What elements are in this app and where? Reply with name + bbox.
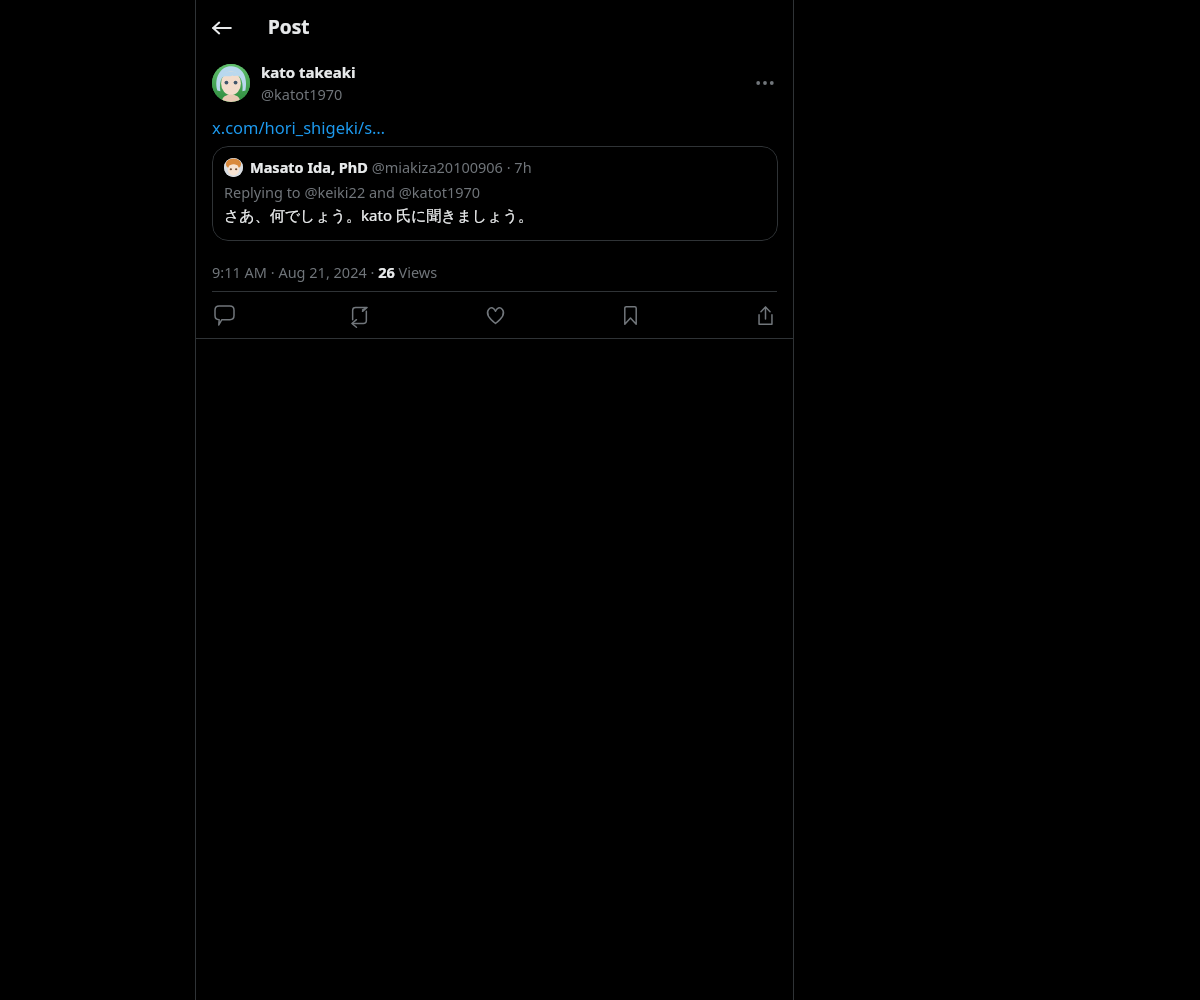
button[interactable]: Masato Ida, PhD @miakiza20100906 · 7h bbox=[212, 146, 778, 241]
button[interactable]: More options bbox=[747, 65, 783, 101]
staticText: Post bbox=[268, 14, 310, 40]
button[interactable]: Reply bbox=[207, 298, 241, 332]
staticText: Masato Ida, PhD @miakiza20100906 · 7h bbox=[250, 157, 532, 177]
button[interactable]: x.com/hori_shigeki/s… bbox=[212, 116, 777, 138]
button[interactable]: Like bbox=[478, 298, 512, 332]
button[interactable]: Bookmark bbox=[613, 298, 647, 332]
button[interactable]: kato takeaki bbox=[195, 55, 794, 110]
staticText: さあ、何でしょう。kato 氏に聞きましょう。 bbox=[224, 205, 534, 225]
button[interactable]: Share bbox=[748, 298, 782, 332]
staticText: kato takeaki bbox=[261, 62, 356, 82]
staticText: @katot1970 bbox=[261, 84, 343, 104]
button[interactable]: Back bbox=[204, 10, 240, 46]
staticText: x.com/hori_shigeki/s… bbox=[212, 116, 386, 138]
staticText: 9:11 AM · Aug 21, 2024 · 26 Views bbox=[212, 262, 438, 282]
button[interactable]: Repost bbox=[342, 298, 376, 332]
staticText: Replying to @keiki22 and @katot1970 bbox=[224, 182, 481, 202]
